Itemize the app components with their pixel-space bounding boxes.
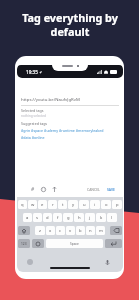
staticText: Suggested tags [21, 121, 48, 126]
button[interactable]: Emoji [40, 186, 47, 193]
button[interactable]: Backspace [110, 226, 122, 235]
button[interactable]: s [33, 213, 42, 222]
button[interactable]: i [90, 200, 100, 209]
staticText: e [41, 202, 44, 208]
button[interactable]: c [56, 226, 65, 235]
staticText: g [67, 215, 70, 221]
button[interactable]: y [68, 200, 78, 209]
button[interactable]: u [79, 200, 89, 209]
button[interactable]: Numbers [18, 239, 30, 248]
button[interactable]: Emoji [27, 259, 33, 265]
staticText: z [39, 228, 41, 234]
button[interactable]: l [107, 213, 117, 222]
staticText: r [52, 202, 54, 208]
button[interactable]: g [63, 213, 73, 222]
staticText: nothing selected [21, 114, 46, 118]
staticText: #grin #space #udemy #runtime #memoryleak… [21, 128, 104, 133]
staticText: k [100, 215, 103, 221]
staticText: v [69, 228, 72, 234]
button[interactable]: Upload [51, 186, 58, 193]
button[interactable]: Shift [18, 226, 30, 235]
button[interactable]: Return [105, 239, 122, 248]
button[interactable]: n [86, 226, 95, 235]
staticText: x [49, 228, 52, 234]
staticText: o [105, 202, 108, 208]
button[interactable]: Space [46, 239, 103, 248]
staticText: https://youtu.be/NaufvJgRvM [21, 96, 80, 102]
staticText: d [46, 215, 49, 221]
button[interactable]: z [35, 226, 45, 235]
staticText: c [59, 228, 62, 234]
staticText: n [89, 228, 92, 234]
button[interactable]: m [96, 226, 105, 235]
staticText: s [36, 215, 39, 221]
staticText: Selected tags [21, 108, 44, 113]
button[interactable]: x [46, 226, 55, 235]
button[interactable]: b [76, 226, 85, 235]
button[interactable]: q [18, 200, 27, 209]
staticText: q [21, 202, 24, 208]
staticText: h [78, 215, 81, 221]
staticText: a [26, 215, 29, 221]
staticText: b [79, 228, 82, 234]
staticText: w [31, 202, 35, 208]
button[interactable]: f [53, 213, 62, 222]
staticText: m [99, 228, 103, 234]
staticText: Space [70, 242, 79, 246]
button[interactable]: d [43, 213, 52, 222]
staticText: f [57, 215, 59, 221]
staticText: t [62, 202, 64, 208]
button[interactable]: e [38, 200, 47, 209]
button[interactable]: k [96, 213, 106, 222]
button[interactable]: t [58, 200, 67, 209]
button[interactable]: v [66, 226, 75, 235]
button[interactable]: SAVE [106, 185, 116, 194]
button[interactable]: Voice input [104, 259, 110, 265]
staticText: y [72, 202, 75, 208]
staticText: j [89, 215, 91, 221]
staticText: i [94, 202, 96, 208]
button[interactable]: w [28, 200, 37, 209]
staticText: Tag everything by default [22, 10, 118, 39]
button[interactable]: r [48, 200, 57, 209]
button[interactable]: j [85, 213, 95, 222]
button[interactable]: p [112, 200, 122, 209]
staticText: #data #online [21, 135, 45, 140]
staticText: 123 [21, 242, 27, 246]
button[interactable]: a [23, 213, 32, 222]
staticText: # [31, 186, 35, 193]
button[interactable]: CANCEL [86, 185, 101, 194]
staticText: u [83, 202, 86, 208]
button[interactable]: o [101, 200, 111, 209]
staticText: l [111, 215, 113, 221]
staticText: 19:35 [26, 69, 38, 75]
button[interactable]: h [74, 213, 84, 222]
button[interactable]: Add tag [29, 186, 36, 193]
staticText: p [116, 202, 119, 208]
button[interactable]: Emoji keyboard [32, 239, 44, 248]
